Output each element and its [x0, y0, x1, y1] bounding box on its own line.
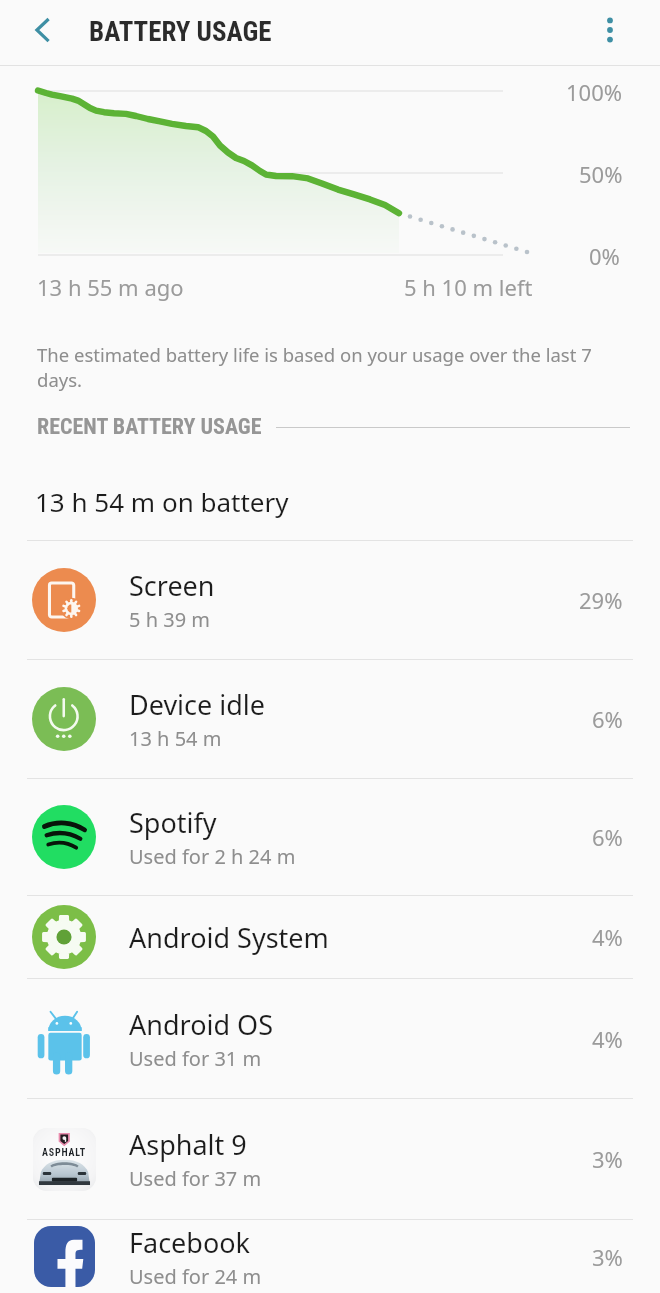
staticText: 0%	[589, 241, 620, 271]
staticText: 6%	[592, 822, 623, 852]
staticText: BATTERY USAGE	[89, 16, 272, 48]
button[interactable]: Android OS	[0, 979, 660, 1098]
staticText: 3%	[592, 1242, 623, 1272]
staticText: Spotify	[129, 804, 217, 841]
staticText: Screen	[129, 567, 215, 604]
staticText: Asphalt 9	[129, 1126, 247, 1163]
button[interactable]: ASPHALT	[0, 1099, 660, 1219]
button[interactable]: Android System	[0, 896, 660, 978]
staticText: The estimated battery life is based on y…	[37, 342, 597, 393]
button[interactable]: Spotify	[0, 779, 660, 895]
button[interactable]: Screen	[0, 541, 660, 659]
staticText: Used for 37 m	[129, 1165, 262, 1192]
staticText: 5 h 39 m	[129, 606, 210, 633]
staticText: 100%	[566, 77, 623, 107]
staticText: Used for 31 m	[129, 1045, 262, 1072]
staticText: 4%	[592, 922, 623, 952]
staticText: Android OS	[129, 1006, 273, 1043]
button[interactable]: Device idle	[0, 660, 660, 778]
staticText: 13 h 54 m on battery	[35, 484, 289, 519]
staticText: Facebook	[129, 1224, 251, 1261]
button[interactable]: Navigate up	[13, 0, 73, 60]
staticText: ASPHALT	[42, 1147, 87, 1159]
staticText: RECENT BATTERY USAGE	[37, 414, 262, 440]
staticText: Used for 2 h 24 m	[129, 843, 296, 870]
staticText: 5 h 10 m left	[404, 272, 533, 302]
staticText: 29%	[579, 585, 623, 615]
button[interactable]: More options	[580, 0, 640, 60]
staticText: 13 h 55 m ago	[37, 272, 184, 302]
staticText: 6%	[592, 704, 623, 734]
staticText: Device idle	[129, 686, 266, 723]
staticText: 50%	[579, 159, 623, 189]
button[interactable]: Facebook	[0, 1220, 660, 1293]
staticText: Used for 24 m	[129, 1263, 262, 1290]
staticText: 3%	[592, 1144, 623, 1174]
staticText: Android System	[129, 919, 329, 956]
staticText: 13 h 54 m	[129, 725, 222, 752]
staticText: 4%	[592, 1024, 623, 1054]
